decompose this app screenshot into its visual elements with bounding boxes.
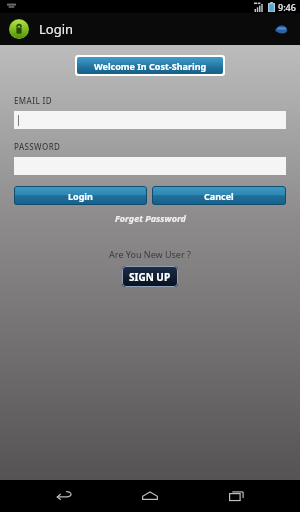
button[interactable]: Home <box>128 482 172 510</box>
staticText: Login <box>68 190 93 202</box>
button[interactable]: Recent apps <box>214 482 258 510</box>
button[interactable] <box>14 111 286 129</box>
button[interactable]: Forget Password <box>115 212 186 224</box>
button[interactable]: Login <box>14 186 147 205</box>
staticText: Welcome In Cost-Sharing <box>94 60 207 72</box>
button[interactable]: Welcome In Cost-Sharing <box>77 57 223 74</box>
button[interactable]: Cancel <box>152 186 286 205</box>
button[interactable]: Back <box>42 482 86 510</box>
staticText: Cancel <box>204 190 234 202</box>
staticText: Login <box>39 20 74 38</box>
staticText: SIGN UP <box>129 270 171 284</box>
staticText: Are You New User ? <box>109 248 191 260</box>
button[interactable]: SIGN UP <box>122 266 178 287</box>
staticText: 9:46 <box>278 1 296 13</box>
staticText: PASSWORD <box>14 141 61 152</box>
button[interactable]: Overflow menu <box>272 18 294 40</box>
staticText: Forget Password <box>115 212 186 224</box>
staticText: EMAIL ID <box>14 95 53 106</box>
